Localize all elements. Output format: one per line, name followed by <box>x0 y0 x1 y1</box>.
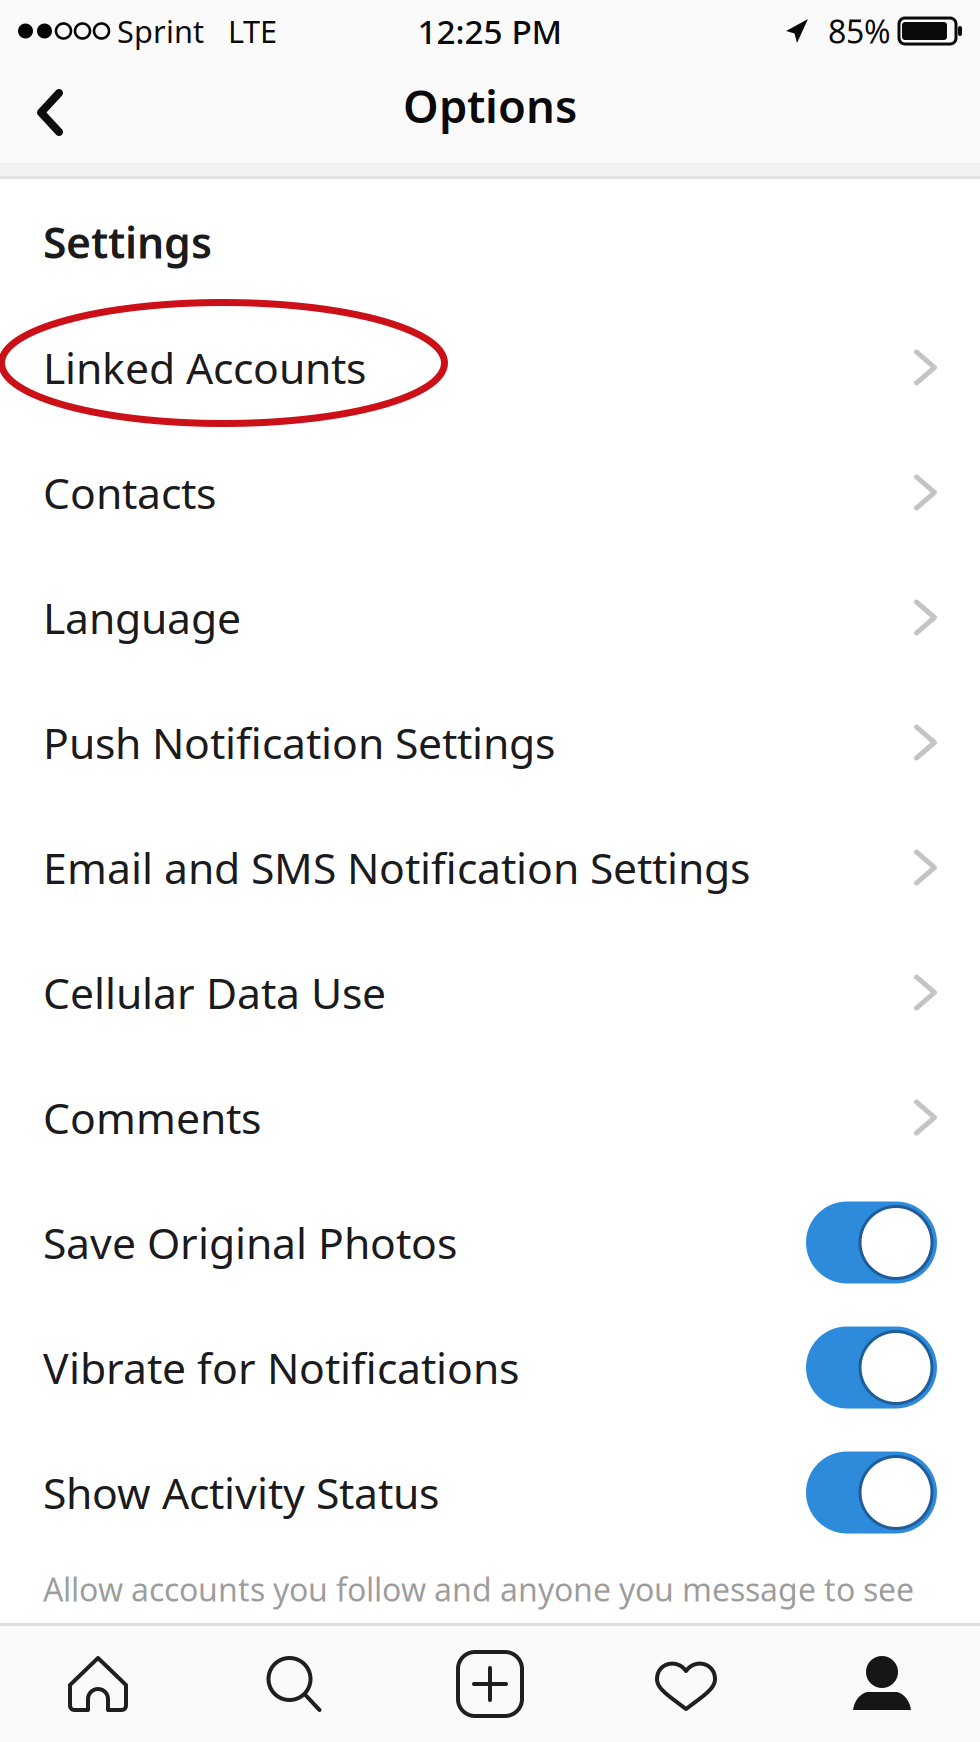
staticText: Save Original Photos <box>43 1214 457 1271</box>
staticText: Cellular Data Use <box>43 964 386 1021</box>
button[interactable]: Push Notification Settings <box>0 680 980 805</box>
button[interactable]: Show Activity Status <box>0 1430 980 1555</box>
button[interactable]: Vibrate for Notifications <box>0 1305 980 1430</box>
button[interactable]: New Post <box>392 1626 588 1742</box>
staticText: Settings <box>43 214 212 270</box>
button[interactable]: Activity <box>588 1626 784 1742</box>
staticText: Show Activity Status <box>43 1464 439 1521</box>
staticText: Email and SMS Notification Settings <box>43 839 750 896</box>
staticText: Comments <box>43 1089 261 1146</box>
button[interactable]: Search <box>196 1626 392 1742</box>
staticText: Options <box>403 75 577 136</box>
staticText: 12:25 PM <box>417 9 562 53</box>
staticText: Allow accounts you follow and anyone you… <box>43 1568 914 1610</box>
button[interactable]: Save Original Photos <box>0 1180 980 1305</box>
staticText: Linked Accounts <box>43 339 366 396</box>
button[interactable]: Linked Accounts <box>0 305 980 430</box>
button[interactable]: Cellular Data Use <box>0 930 980 1055</box>
staticText: LTE <box>228 11 277 51</box>
staticText: Vibrate for Notifications <box>43 1339 519 1396</box>
button[interactable]: Email and SMS Notification Settings <box>0 805 980 930</box>
staticText: Sprint <box>117 11 204 51</box>
button[interactable]: Back <box>0 62 100 163</box>
staticText: Push Notification Settings <box>43 714 555 771</box>
staticText: Language <box>43 589 241 646</box>
button[interactable]: Profile <box>784 1626 980 1742</box>
button[interactable]: Contacts <box>0 430 980 555</box>
button[interactable]: Home <box>0 1626 196 1742</box>
button[interactable]: Comments <box>0 1055 980 1180</box>
button[interactable]: Language <box>0 555 980 680</box>
staticText: 85% <box>828 10 891 52</box>
staticText: Contacts <box>43 464 216 521</box>
